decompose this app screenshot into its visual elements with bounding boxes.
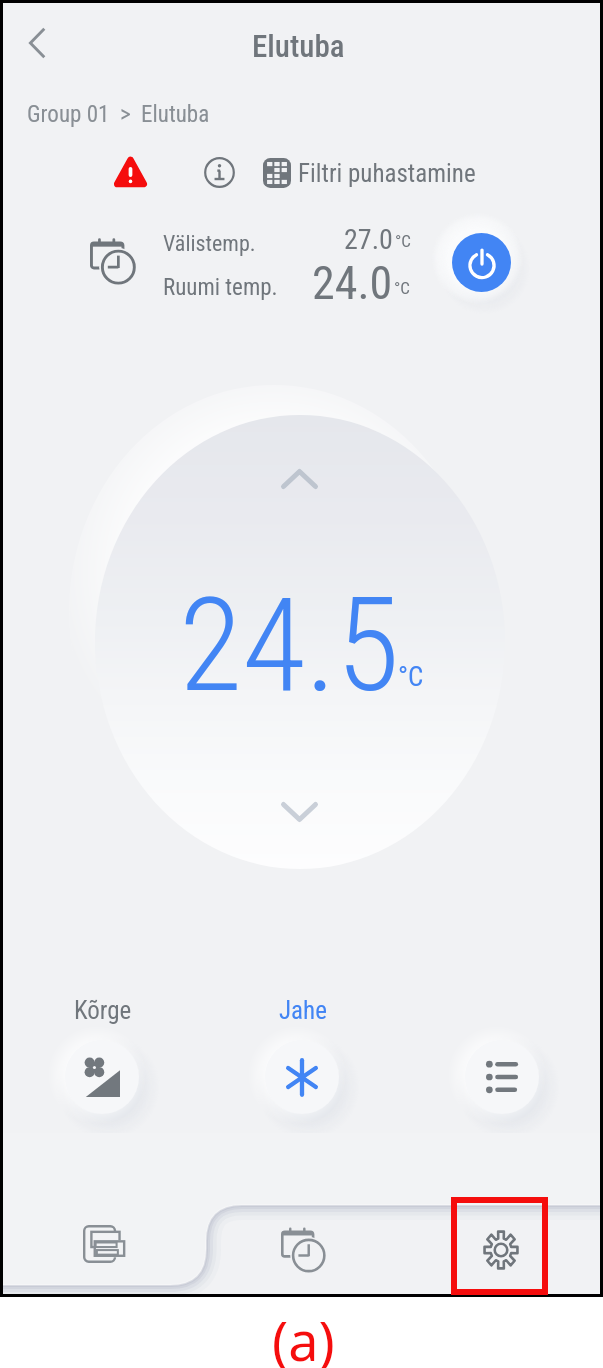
button[interactable]: Back [10, 16, 64, 70]
button[interactable]: Settings [402, 1205, 600, 1294]
staticText: 27.0 [344, 223, 393, 256]
staticText: (a) [272, 1303, 335, 1368]
staticText: °C [398, 661, 424, 693]
button[interactable]: Target temperature [95, 415, 505, 869]
button[interactable]: More options [465, 1040, 539, 1114]
staticText: 24.0 [312, 256, 393, 310]
button[interactable]: Devices [3, 1201, 204, 1287]
staticText: Välistemp. [163, 231, 256, 257]
staticText: Filtri puhastamine [298, 159, 476, 188]
staticText: Elutuba [252, 28, 345, 64]
button[interactable]: Schedule [204, 1205, 402, 1294]
staticText: Ruumi temp. [163, 274, 278, 301]
staticText: °C [395, 231, 411, 251]
staticText: Group 01 > Elutuba [27, 101, 210, 128]
button[interactable]: Fan speed [65, 1040, 139, 1114]
staticText: 24.5 [179, 569, 400, 721]
staticText: Kõrge [74, 996, 132, 1025]
button[interactable]: Cool mode [265, 1040, 339, 1114]
button[interactable]: Power [452, 233, 511, 292]
staticText: °C [394, 278, 410, 298]
staticText: Jahe [279, 996, 327, 1025]
